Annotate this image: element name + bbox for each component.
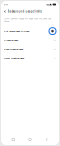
button[interactable]: Sleeping apps xyxy=(1,36,59,45)
button[interactable]: Recents xyxy=(9,135,18,144)
staticText: 1 xyxy=(54,57,55,59)
staticText: Put unused apps to sleep xyxy=(4,30,29,33)
button[interactable]: Put unused apps to sleep xyxy=(1,27,59,36)
staticText: 0 xyxy=(54,48,55,50)
staticText: 9:41 xyxy=(4,3,8,6)
staticText: 0 xyxy=(54,39,55,41)
button[interactable]: Never sleeping apps xyxy=(1,54,59,63)
button[interactable]: Home xyxy=(25,135,34,144)
button[interactable]: Deep sleeping apps xyxy=(1,45,59,54)
staticText: Sleeping apps xyxy=(4,39,18,42)
staticText: Deep sleeping apps xyxy=(4,48,23,51)
button[interactable]: Back xyxy=(2,8,7,15)
staticText: Limit battery usage for apps that you do… xyxy=(4,17,51,23)
staticText: Never sleeping apps xyxy=(4,57,24,60)
button[interactable]: Back xyxy=(42,135,51,144)
staticText: Background usage limits xyxy=(7,10,41,13)
